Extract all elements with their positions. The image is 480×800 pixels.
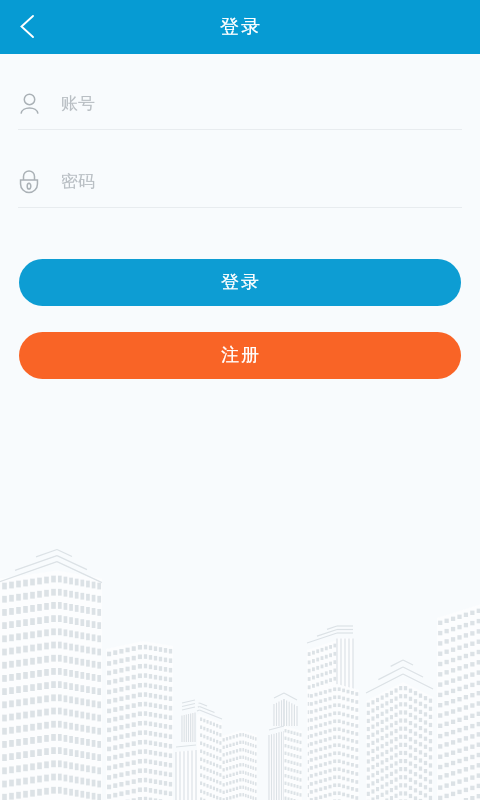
staticText: 密码 (61, 171, 95, 192)
button[interactable]: Back (0, 0, 54, 54)
button[interactable]: 注册 (19, 332, 461, 379)
staticText: 账号 (61, 93, 95, 114)
staticText: 登录 (220, 271, 260, 294)
staticText: 注册 (220, 344, 260, 367)
button[interactable]: 登录 (19, 259, 461, 306)
staticText: 登录 (219, 15, 261, 39)
